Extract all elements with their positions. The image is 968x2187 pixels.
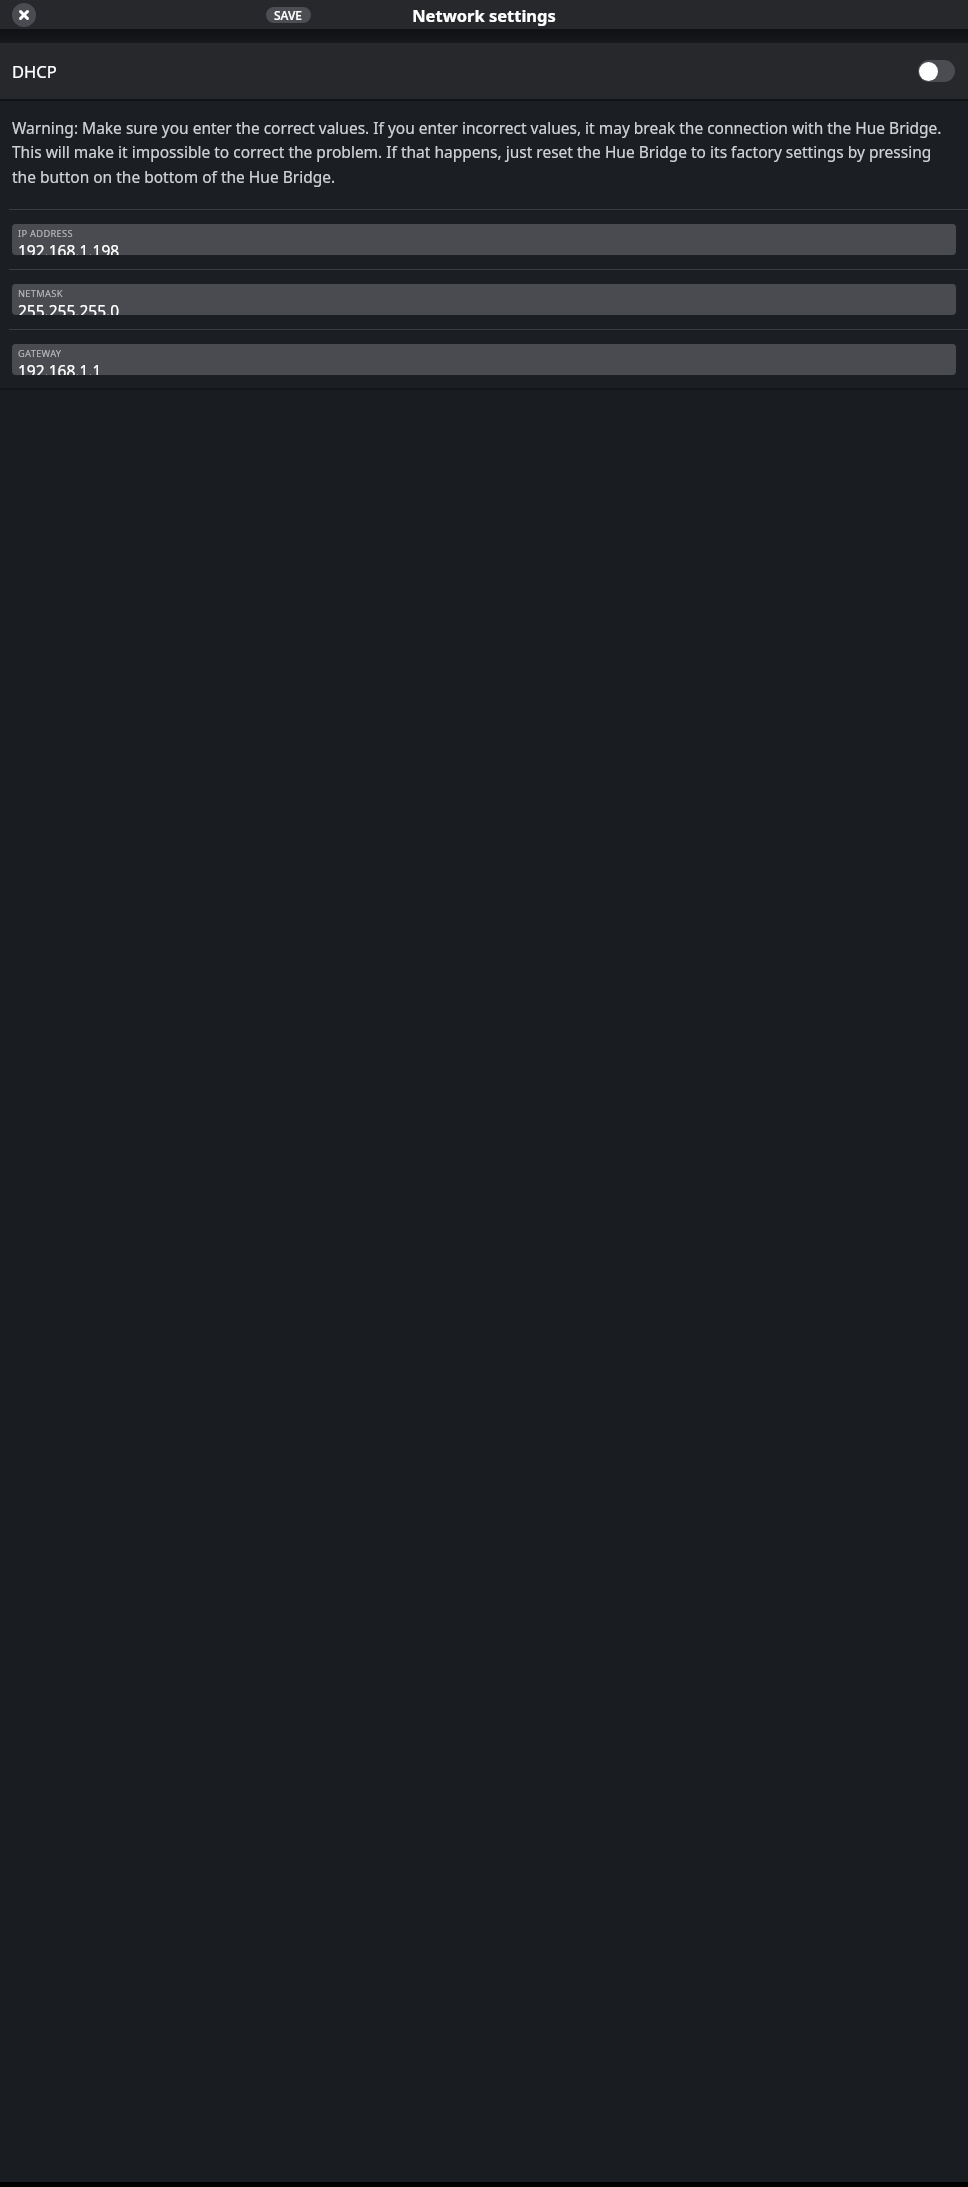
staticText: 192.168.1.1 [18, 360, 102, 375]
staticText: Warning: Make sure you enter the correct… [12, 117, 958, 188]
staticText: DHCP [12, 60, 57, 82]
staticText: IP ADDRESS [18, 227, 73, 240]
staticText: NETMASK [18, 287, 63, 300]
staticText: SAVE [274, 7, 303, 23]
button[interactable]: DHCP [0, 43, 968, 99]
button[interactable]: IP ADDRESS [12, 224, 956, 255]
staticText: 192.168.1.198 [18, 240, 120, 255]
staticText: GATEWAY [18, 347, 62, 360]
button[interactable]: GATEWAY [12, 344, 956, 375]
button[interactable]: SAVE [266, 7, 311, 23]
staticText: 255.255.255.0 [18, 300, 120, 315]
button[interactable]: NETMASK [12, 284, 956, 315]
staticText: Network settings [412, 4, 556, 26]
button[interactable]: DHCP toggle [918, 60, 955, 82]
button[interactable]: Close [12, 3, 36, 27]
